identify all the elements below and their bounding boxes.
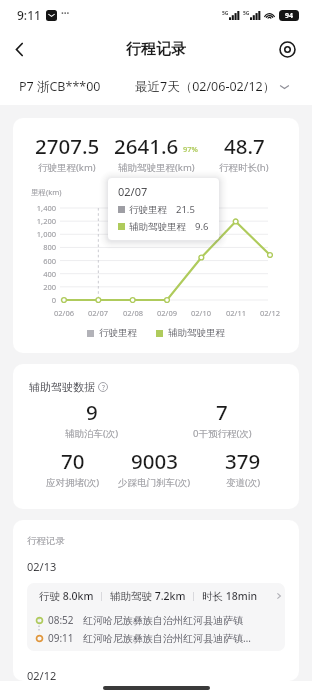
staticText: 21.5 (176, 203, 195, 216)
staticText: 97% (183, 144, 198, 154)
staticText: 94 (285, 11, 294, 21)
button[interactable]: Settings (272, 34, 302, 64)
staticText: 02/10 (185, 308, 217, 318)
staticText: 辅助驾驶 7.2km (110, 589, 186, 603)
staticText: 行程时长(h) (219, 161, 269, 174)
button[interactable]: 最近7天（02/06-02/12） (135, 78, 290, 95)
staticText: 少踩电门刹车(次) (118, 476, 191, 489)
staticText: 02/07 (118, 184, 148, 199)
staticText: 9.6 (195, 220, 209, 233)
staticText: 0 (13, 295, 56, 305)
staticText: 600 (13, 256, 56, 266)
staticText: 09:11 (48, 631, 74, 645)
staticText: 辅助驾驶数据 (29, 380, 95, 394)
staticText: 9:11 (17, 7, 41, 23)
staticText: 行驶里程 (99, 327, 137, 339)
staticText: 02/09 (151, 308, 183, 318)
staticText: 行程记录 (27, 535, 65, 547)
staticText: 7 (216, 398, 228, 426)
staticText: 辅助驾驶里程 (168, 327, 225, 339)
staticText: 02/08 (117, 308, 149, 318)
staticText: 379 (225, 447, 261, 475)
staticText: 9 (86, 398, 98, 426)
staticText: 02/11 (220, 308, 252, 318)
staticText: 红河哈尼族彝族自治州红河县迪萨镇… (83, 631, 251, 645)
staticText: 1,200 (13, 216, 56, 226)
staticText: 02/07 (82, 308, 114, 318)
staticText: 辅助泊车(次) (65, 427, 119, 440)
button[interactable]: P7 浙CB***00 (19, 78, 101, 95)
staticText: ··· (61, 6, 70, 20)
staticText: 5G (222, 10, 229, 17)
staticText: ? (102, 383, 105, 392)
staticText: 辅助驾驶里程(km) (118, 161, 195, 174)
staticText: 2707.5 (35, 132, 100, 160)
staticText: 辅助驾驶里程 (129, 221, 186, 233)
staticText: 最近7天（02/06-02/12） (135, 78, 276, 95)
staticText: 48.7 (224, 132, 265, 160)
staticText: 1,000 (13, 229, 56, 239)
staticText: 变道(次) (226, 476, 261, 489)
staticText: 行驶里程 (129, 204, 167, 216)
button[interactable]: 行驶 8.0km (27, 583, 285, 651)
staticText: 1,400 (13, 203, 56, 213)
staticText: 200 (13, 282, 56, 292)
staticText: 02/12 (27, 668, 57, 681)
staticText: 行程记录 (126, 40, 186, 59)
staticText: 08:52 (48, 613, 74, 627)
staticText: 5G (243, 10, 250, 17)
staticText: 应对拥堵(次) (46, 476, 100, 489)
staticText: 2641.6 (114, 132, 179, 160)
button[interactable]: Back (0, 30, 38, 68)
staticText: 02/13 (27, 559, 57, 574)
staticText: 行驶里程(km) (38, 161, 96, 174)
staticText: 02/06 (48, 308, 80, 318)
staticText: 0干预行程(次) (193, 427, 252, 440)
staticText: 02/12 (254, 308, 286, 318)
staticText: P7 浙CB***00 (19, 78, 101, 95)
staticText: 时长 18min (202, 589, 258, 603)
staticText: 9003 (131, 447, 178, 475)
staticText: 800 (13, 242, 56, 252)
staticText: 红河哈尼族彝族自治州红河县迪萨镇 (83, 614, 243, 627)
staticText: 70 (61, 447, 85, 475)
staticText: 400 (13, 269, 56, 279)
staticText: 里程(km) (31, 187, 62, 197)
staticText: 行驶 8.0km (39, 589, 94, 603)
